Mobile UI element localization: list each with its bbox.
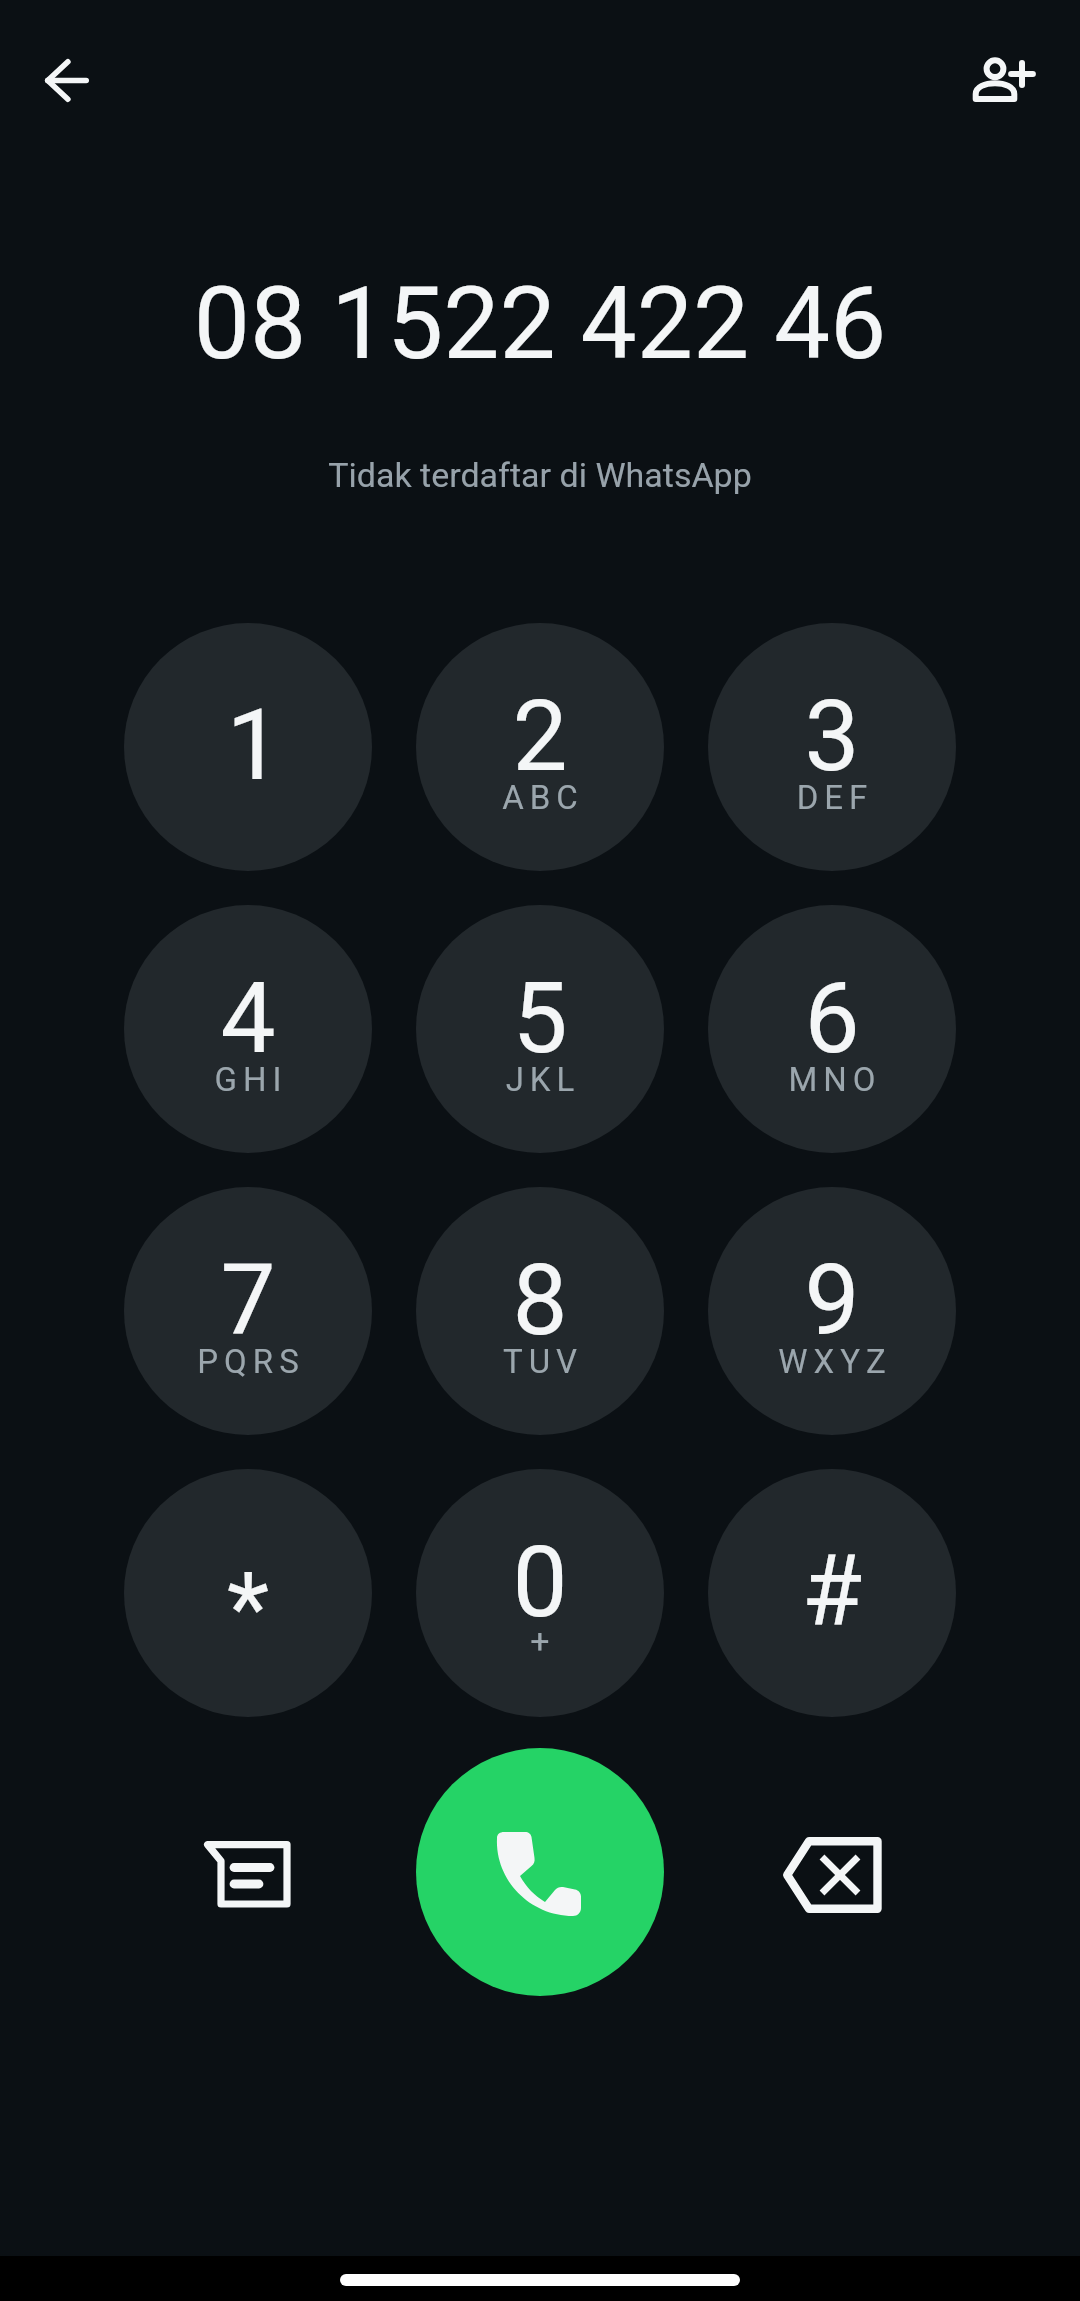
button[interactable]: 8 <box>416 1187 664 1435</box>
button[interactable]: Backspace <box>708 1748 956 1996</box>
button[interactable]: 7 <box>124 1187 372 1435</box>
staticText: 1 <box>130 688 372 803</box>
button[interactable]: * <box>124 1469 372 1717</box>
staticText: Tidak terdaftar di WhatsApp <box>0 455 1080 495</box>
staticText: * <box>124 1551 372 1666</box>
button[interactable]: Back <box>23 36 111 124</box>
staticText: GHI <box>127 1060 372 1099</box>
button[interactable]: 3 <box>708 623 956 871</box>
button[interactable]: 1 <box>124 623 372 871</box>
staticText: 3 <box>708 679 956 794</box>
button[interactable]: Send message <box>124 1748 372 1996</box>
staticText: 2 <box>416 679 664 794</box>
button[interactable]: 9 <box>708 1187 956 1435</box>
button[interactable]: Add contact <box>959 36 1047 124</box>
staticText: PQRS <box>127 1342 372 1381</box>
staticText: WXYZ <box>711 1342 956 1381</box>
staticText: JKL <box>419 1060 664 1099</box>
staticText: DEF <box>711 778 956 817</box>
staticText: 9 <box>708 1243 956 1358</box>
staticText: 4 <box>124 961 372 1076</box>
button[interactable]: 4 <box>124 905 372 1153</box>
button[interactable]: # <box>708 1469 956 1717</box>
staticText: 7 <box>124 1243 372 1358</box>
button[interactable]: 5 <box>416 905 664 1153</box>
button[interactable]: 0 <box>416 1469 664 1717</box>
staticText: 8 <box>416 1243 664 1358</box>
staticText: TUV <box>419 1342 664 1381</box>
staticText: ABC <box>419 778 664 817</box>
button[interactable]: 2 <box>416 623 664 871</box>
staticText: 08 1522 422 46 <box>0 265 1080 382</box>
staticText: MNO <box>711 1060 956 1099</box>
staticText: + <box>416 1621 664 1661</box>
button[interactable]: 6 <box>708 905 956 1153</box>
staticText: # <box>708 1534 956 1649</box>
staticText: 6 <box>708 961 956 1076</box>
staticText: 5 <box>416 961 664 1076</box>
button[interactable]: Call <box>416 1748 664 1996</box>
staticText: 0 <box>416 1525 664 1640</box>
